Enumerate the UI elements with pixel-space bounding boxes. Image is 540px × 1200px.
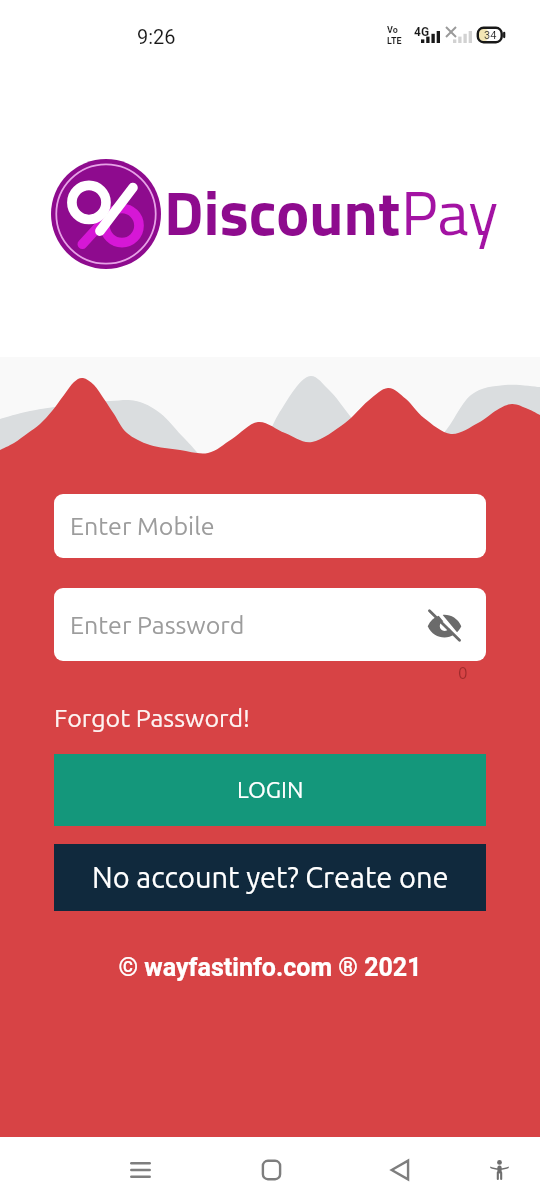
- staticText: 4G: [414, 25, 430, 39]
- button[interactable]: Back: [370, 1137, 430, 1200]
- button[interactable]: Enter Password: [54, 588, 486, 661]
- staticText: Enter Password: [70, 611, 245, 639]
- button[interactable]: Enter Mobile: [54, 494, 486, 558]
- staticText: Discount: [164, 165, 401, 259]
- button[interactable]: LOGIN: [54, 754, 486, 826]
- staticText: 34: [484, 29, 497, 42]
- button[interactable]: Forgot Password!: [54, 704, 250, 732]
- staticText: Pay: [401, 165, 499, 259]
- staticText: No account yet? Create one: [92, 861, 449, 894]
- button[interactable]: Home: [241, 1137, 301, 1200]
- button[interactable]: Menu: [110, 1137, 170, 1200]
- staticText: Vo: [387, 25, 398, 36]
- staticText: LOGIN: [237, 777, 304, 803]
- staticText: 9:26: [137, 25, 176, 48]
- staticText: © wayfastinfo.com ® 2021: [54, 953, 486, 982]
- button[interactable]: No account yet? Create one: [54, 844, 486, 911]
- staticText: 0: [458, 663, 468, 682]
- button[interactable]: Accessibility: [469, 1137, 529, 1200]
- staticText: LTE: [387, 36, 402, 47]
- staticText: Enter Mobile: [70, 512, 215, 540]
- button[interactable]: Show password: [422, 603, 466, 647]
